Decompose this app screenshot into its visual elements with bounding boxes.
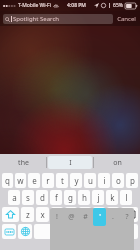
button[interactable]: e bbox=[28, 173, 40, 188]
button[interactable]: u bbox=[84, 173, 96, 188]
button[interactable]: l bbox=[120, 190, 132, 205]
button[interactable]: x bbox=[36, 207, 49, 222]
button[interactable]: d bbox=[36, 190, 48, 205]
staticText: 65% bbox=[113, 2, 123, 9]
button[interactable]: p bbox=[126, 173, 138, 188]
staticText: ' bbox=[99, 212, 101, 222]
button[interactable]: Cancel bbox=[116, 13, 137, 25]
staticText: k bbox=[110, 192, 115, 203]
button[interactable]: s bbox=[22, 190, 34, 205]
staticText: x bbox=[40, 209, 45, 220]
staticText: y bbox=[74, 175, 79, 186]
staticText: 4:08 PM bbox=[67, 2, 86, 9]
staticText: T-Mobile Wi-Fi bbox=[18, 2, 51, 9]
button[interactable]: i bbox=[98, 173, 110, 188]
staticText: a bbox=[12, 192, 17, 203]
button[interactable]: ' bbox=[93, 208, 106, 226]
button[interactable]: h bbox=[78, 190, 90, 205]
button[interactable]: ! bbox=[50, 208, 134, 250]
button[interactable]: y bbox=[70, 173, 82, 188]
button[interactable]: q bbox=[2, 173, 13, 188]
button[interactable]: Search bbox=[108, 224, 138, 239]
button[interactable]: t bbox=[56, 173, 68, 188]
button[interactable]: b bbox=[79, 207, 91, 222]
staticText: t bbox=[61, 175, 64, 186]
staticText: s bbox=[26, 192, 30, 203]
button[interactable]: v bbox=[65, 207, 77, 222]
button[interactable]: space bbox=[34, 224, 106, 239]
staticText: the bbox=[18, 158, 29, 168]
staticText: r bbox=[46, 175, 50, 186]
button[interactable]: I bbox=[48, 156, 92, 169]
button[interactable]: Change keyboard bbox=[18, 224, 32, 239]
staticText: ? bbox=[125, 212, 129, 222]
button[interactable]: Spotlight Search bbox=[3, 14, 113, 24]
button[interactable]: f bbox=[50, 190, 62, 205]
button[interactable]: # bbox=[78, 208, 92, 226]
button[interactable]: Shift bbox=[2, 207, 19, 222]
staticText: . bbox=[112, 212, 114, 222]
staticText: g bbox=[68, 192, 73, 203]
staticText: w bbox=[17, 175, 24, 186]
staticText: v bbox=[69, 209, 74, 220]
staticText: m bbox=[109, 209, 117, 220]
staticText: b bbox=[83, 209, 88, 220]
staticText: o bbox=[116, 175, 121, 186]
staticText: c bbox=[55, 209, 59, 220]
button[interactable]: k bbox=[106, 190, 118, 205]
button[interactable]: m bbox=[107, 207, 119, 222]
button[interactable]: c bbox=[51, 207, 63, 222]
staticText: Cancel bbox=[117, 15, 136, 23]
button[interactable]: Delete bbox=[121, 207, 138, 222]
staticText: i bbox=[103, 175, 106, 186]
button[interactable]: n bbox=[93, 207, 105, 222]
button[interactable]: ! bbox=[50, 208, 64, 226]
button[interactable]: w bbox=[15, 173, 26, 188]
staticText: j bbox=[97, 192, 100, 203]
staticText: I bbox=[69, 158, 72, 168]
button[interactable]: o bbox=[112, 173, 124, 188]
button[interactable]: r bbox=[42, 173, 54, 188]
button[interactable]: the bbox=[1, 156, 45, 169]
staticText: z bbox=[26, 209, 30, 220]
staticText: @ bbox=[68, 212, 75, 222]
button[interactable]: a bbox=[8, 190, 20, 205]
staticText: ! bbox=[56, 212, 58, 222]
staticText: Spotlight Search bbox=[13, 15, 59, 23]
button[interactable]: Numbers bbox=[2, 224, 16, 239]
staticText: h bbox=[82, 192, 87, 203]
button[interactable]: @ bbox=[64, 208, 78, 226]
staticText: # bbox=[83, 212, 88, 222]
staticText: q bbox=[5, 175, 10, 186]
button[interactable]: ? bbox=[120, 208, 134, 226]
staticText: d bbox=[40, 192, 45, 203]
staticText: e bbox=[32, 175, 37, 186]
button[interactable]: g bbox=[64, 190, 76, 205]
button[interactable]: z bbox=[21, 207, 34, 222]
staticText: p bbox=[130, 175, 135, 186]
staticText: n bbox=[97, 209, 102, 220]
staticText: on bbox=[113, 158, 122, 168]
button[interactable]: j bbox=[92, 190, 104, 205]
staticText: l bbox=[125, 192, 128, 203]
button[interactable]: on bbox=[95, 156, 139, 169]
staticText: f bbox=[55, 192, 58, 203]
staticText: u bbox=[88, 175, 93, 186]
